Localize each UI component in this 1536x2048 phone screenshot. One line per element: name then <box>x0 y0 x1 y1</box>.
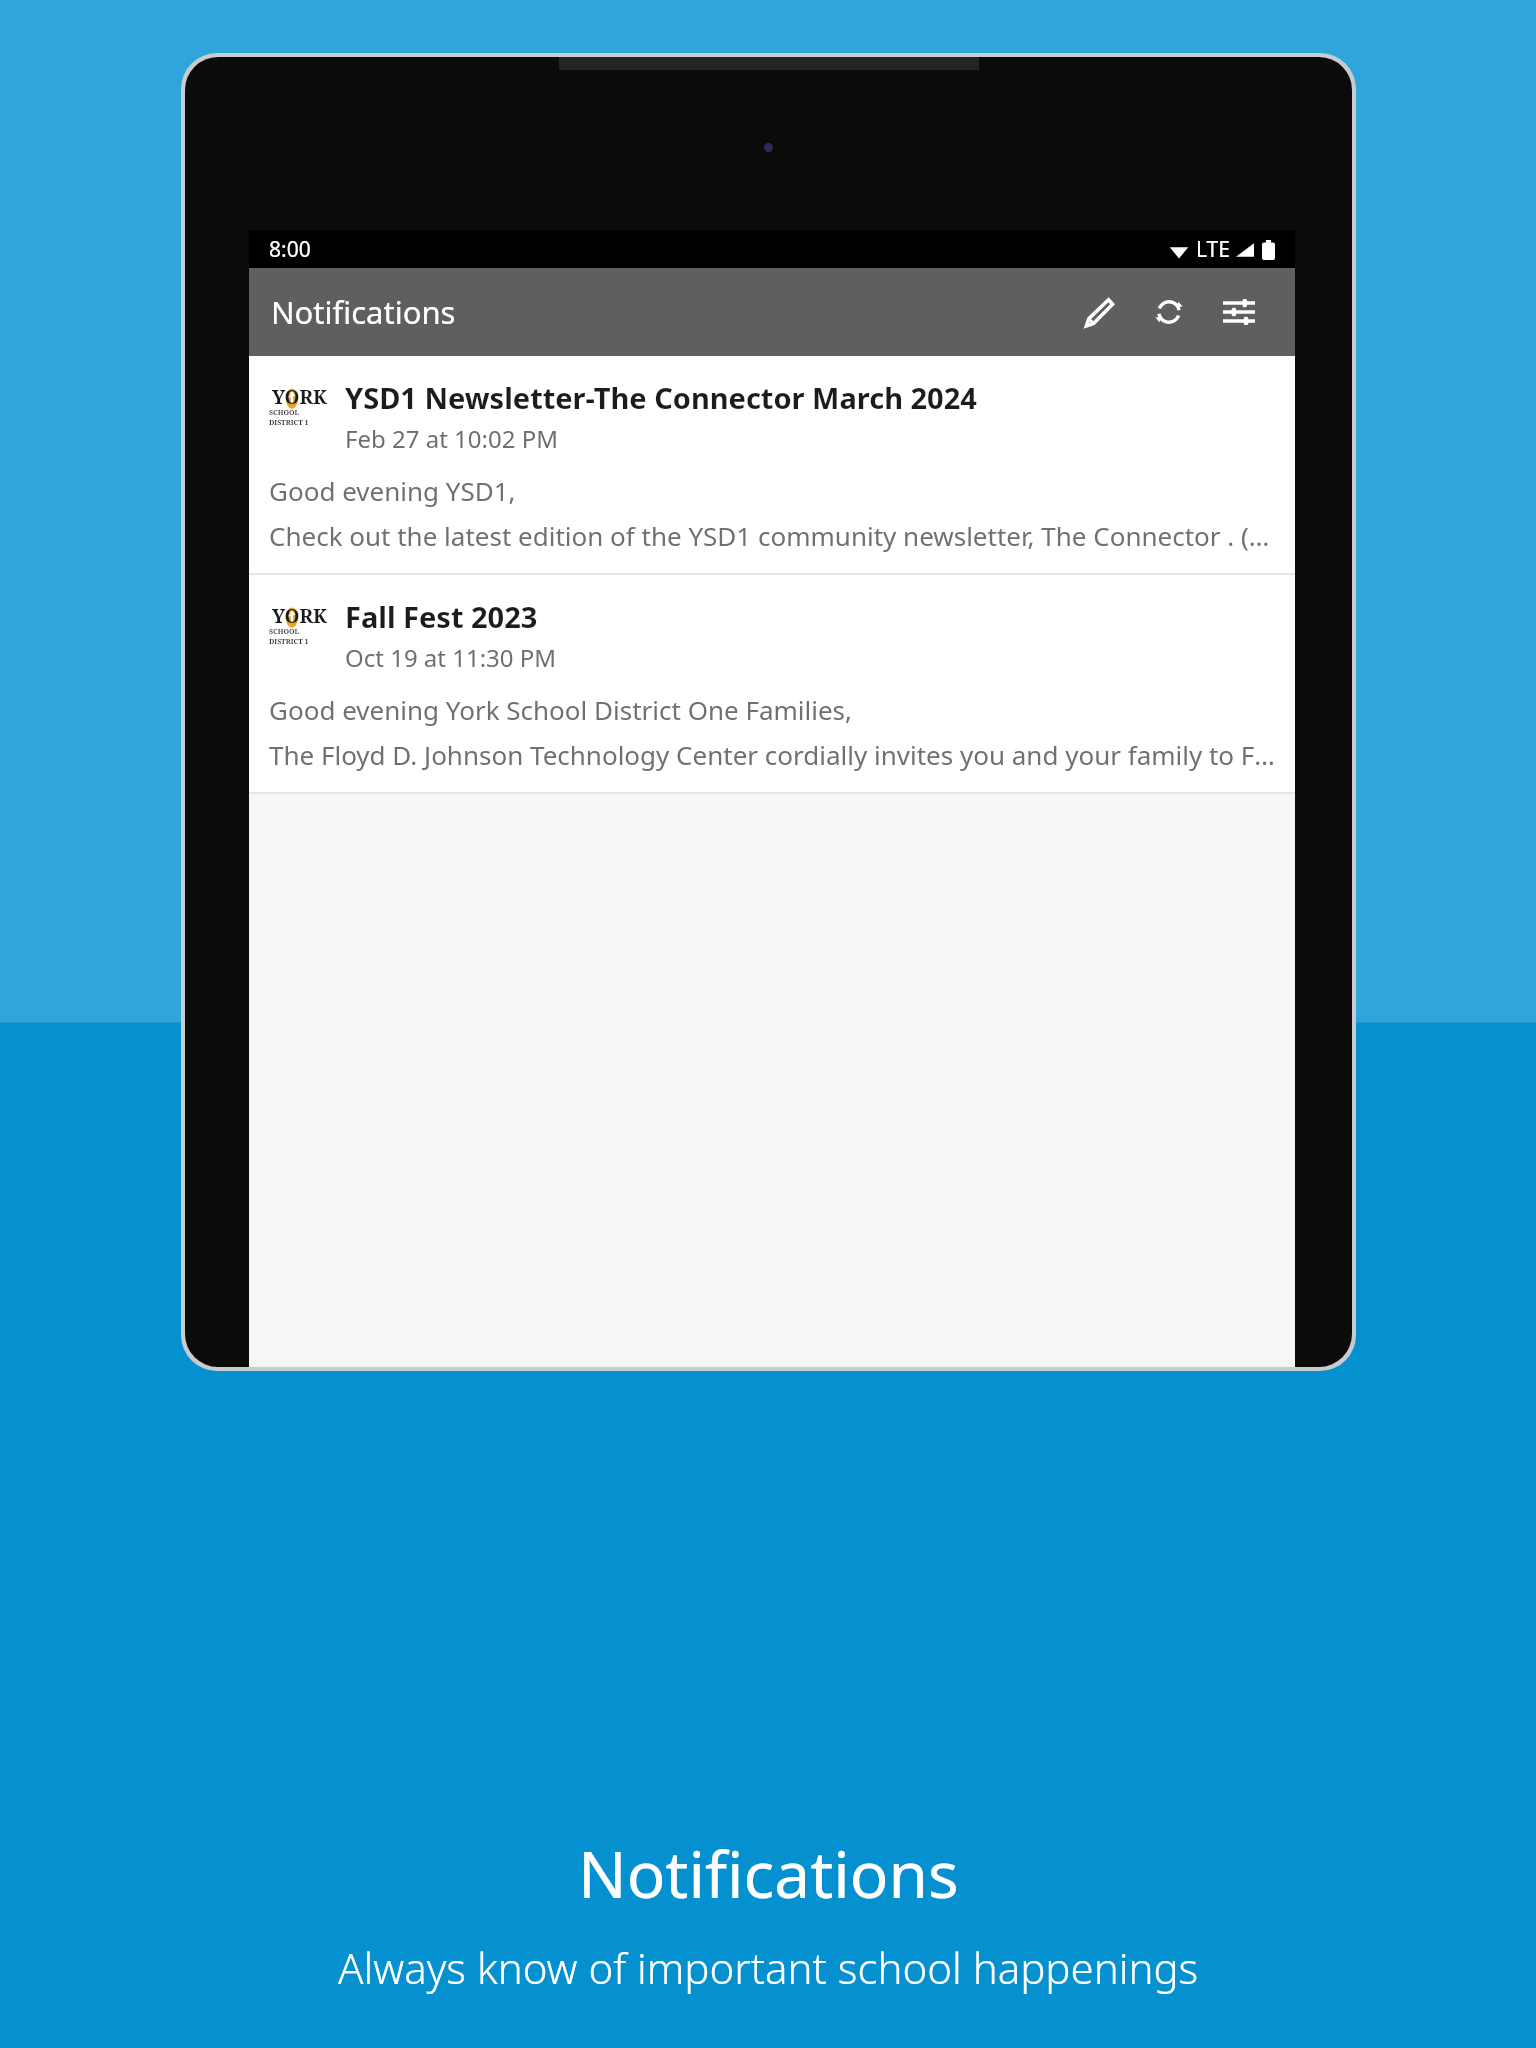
button[interactable]: YORK <box>249 356 1295 573</box>
staticText: SCHOOL DISTRICT 1 <box>269 627 331 647</box>
staticText: Oct 19 at 11:30 PM <box>345 641 557 674</box>
button[interactable]: Compose <box>1067 280 1131 344</box>
staticText: LTE <box>1196 235 1230 264</box>
button[interactable]: Filter <box>1207 280 1271 344</box>
staticText: The Floyd D. Johnson Technology Center c… <box>269 737 1275 772</box>
staticText: 8:00 <box>269 235 311 264</box>
staticText: Fall Fest 2023 <box>345 597 538 636</box>
staticText: Always know of important school happenin… <box>338 1939 1199 1996</box>
staticText: YSD1 Newsletter-The Connector March 2024 <box>345 378 977 417</box>
staticText: Notifications <box>578 1830 959 1917</box>
staticText: Notifications <box>271 291 456 333</box>
staticText: YORK <box>272 384 328 410</box>
staticText: SCHOOL DISTRICT 1 <box>269 408 331 428</box>
staticText: YORK <box>272 603 328 629</box>
staticText: Feb 27 at 10:02 PM <box>345 422 558 455</box>
staticText: Check out the latest edition of the YSD1… <box>269 518 1275 553</box>
button[interactable]: YORK <box>249 575 1295 792</box>
button[interactable]: Refresh <box>1137 280 1201 344</box>
staticText: Good evening YSD1, <box>269 473 516 508</box>
staticText: Good evening York School District One Fa… <box>269 692 853 727</box>
